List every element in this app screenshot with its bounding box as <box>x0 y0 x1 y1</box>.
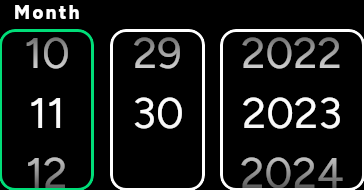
staticText: 2023 <box>242 87 342 139</box>
button[interactable]: Year <box>220 29 364 190</box>
staticText: 10 <box>24 29 70 79</box>
staticText: Month <box>14 1 82 23</box>
staticText: 29 <box>133 29 182 79</box>
staticText: 2024 <box>240 147 344 190</box>
staticText: 11 <box>29 87 65 139</box>
button[interactable]: Day <box>110 29 205 190</box>
staticText: 2022 <box>241 29 342 79</box>
button[interactable]: Month <box>0 29 94 190</box>
staticText: 30 <box>132 87 184 139</box>
staticText: 12 <box>25 147 68 190</box>
